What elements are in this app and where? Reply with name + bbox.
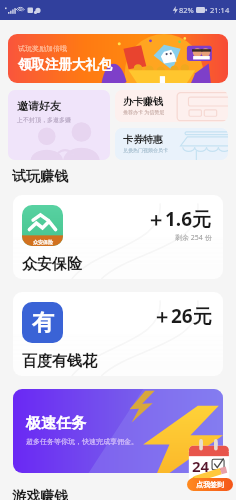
staticText: 82% bbox=[179, 5, 194, 15]
staticText: ＋26元 bbox=[152, 303, 212, 329]
button[interactable]: 卡券特惠 bbox=[115, 128, 228, 160]
button[interactable]: 极速任务 bbox=[13, 389, 223, 473]
staticText: 兑换热门视频会员卡 bbox=[123, 147, 168, 153]
staticText: 极速任务 bbox=[26, 414, 86, 433]
staticText: 21:14 bbox=[210, 5, 230, 15]
button[interactable]: 邀请好友 bbox=[8, 90, 110, 160]
staticText: 试玩赚钱 bbox=[12, 168, 68, 186]
staticText: 有 bbox=[32, 309, 54, 337]
staticText: ＋1.6元 bbox=[146, 206, 212, 232]
staticText: 众安保险 bbox=[22, 255, 82, 274]
staticText: 游戏赚钱 bbox=[12, 488, 68, 500]
button[interactable]: 办卡赚钱 bbox=[115, 90, 228, 122]
staticText: 众安保险 bbox=[33, 239, 53, 245]
staticText: 推荐办卡 为信赞尼 bbox=[123, 109, 165, 116]
staticText: 24 bbox=[192, 456, 210, 476]
staticText: 超多任务等你玩，快速完成享佣金。 bbox=[26, 437, 138, 446]
staticText: 卡券特惠 bbox=[123, 133, 163, 146]
button[interactable]: 点我签到 bbox=[187, 439, 233, 491]
staticText: 领取注册大礼包 bbox=[18, 56, 113, 73]
staticText: 剩余 254 份 bbox=[175, 233, 212, 243]
button[interactable]: 众安保险 bbox=[13, 195, 223, 279]
button[interactable]: 试玩奖励加倍哦 bbox=[8, 34, 228, 83]
staticText: 上不封顶，多邀多赚 bbox=[17, 116, 71, 124]
staticText: 百度有钱花 bbox=[22, 352, 97, 371]
staticText: 办卡赚钱 bbox=[123, 95, 163, 108]
staticText: 试玩奖励加倍哦 bbox=[18, 44, 67, 53]
button[interactable]: 有 bbox=[13, 292, 223, 376]
staticText: 邀请好友 bbox=[17, 99, 61, 113]
staticText: 点我签到 bbox=[196, 480, 224, 489]
